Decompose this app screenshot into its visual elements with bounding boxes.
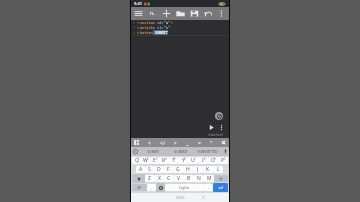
button[interactable]: > [172, 139, 179, 147]
staticText: R [162, 157, 166, 164]
button[interactable]: Shift [132, 174, 145, 183]
staticText: < [148, 140, 151, 146]
button[interactable]: Z [145, 175, 154, 182]
button[interactable]: 2 [141, 157, 150, 164]
button[interactable]: Save [189, 8, 200, 19]
staticText: _ [186, 140, 189, 146]
button[interactable]: B [184, 175, 194, 182]
button[interactable]: Voice input [221, 147, 229, 156]
staticText: 6 [184, 157, 186, 161]
staticText: G [176, 166, 180, 173]
button[interactable]: H [183, 166, 193, 173]
staticText: J [197, 166, 199, 173]
staticText: article [140, 25, 155, 30]
button[interactable]: 6 [178, 157, 188, 164]
button[interactable]: F [163, 166, 173, 173]
staticText: @ [219, 176, 223, 181]
button[interactable]: N [194, 175, 204, 182]
button[interactable]: _ [184, 139, 191, 147]
button[interactable]: 8 [198, 157, 208, 164]
staticText: I [202, 157, 204, 164]
staticText: 1 [138, 157, 140, 161]
staticText: K [206, 166, 210, 173]
button[interactable]: V [174, 175, 184, 182]
button[interactable]: Settings [220, 139, 227, 146]
button[interactable]: A [136, 166, 145, 173]
button[interactable]: 3 [150, 157, 159, 164]
staticText: E [153, 157, 156, 164]
staticText: < [137, 30, 140, 35]
button[interactable] [131, 147, 139, 156]
staticText: X [158, 175, 161, 182]
staticText: < [137, 20, 140, 25]
staticText: W [143, 157, 148, 164]
staticText: Y [182, 157, 185, 164]
staticText: 8 [204, 157, 206, 161]
staticText: SUBMIT [153, 30, 168, 35]
staticText: button [140, 30, 153, 35]
staticText: "a" [164, 20, 171, 25]
button[interactable]: 9 [208, 157, 218, 164]
button[interactable]: C [164, 175, 174, 182]
button[interactable]: SUBMIT [167, 147, 194, 156]
button[interactable]: . [204, 184, 213, 191]
button[interactable]: " [208, 139, 215, 147]
button[interactable]: Settings [215, 112, 223, 120]
button[interactable]: , [147, 184, 156, 191]
staticText: < [137, 25, 140, 30]
staticText: SUBMIT [174, 149, 188, 154]
button[interactable]: J [193, 166, 203, 173]
staticText: H [186, 166, 190, 173]
button[interactable]: Back [192, 193, 215, 202]
button[interactable]: English [165, 184, 204, 191]
button[interactable]: Menu [133, 8, 144, 19]
button[interactable]: D [154, 166, 163, 173]
button[interactable]: New file [161, 8, 172, 19]
button[interactable]: Open [175, 8, 186, 19]
button[interactable]: G [173, 166, 183, 173]
button[interactable]: M [204, 175, 214, 182]
staticText: N [197, 175, 201, 182]
button[interactable]: Keyboard layout [133, 139, 140, 146]
button[interactable]: L [213, 166, 223, 173]
button[interactable]: Run [206, 122, 217, 133]
staticText: 3 [133, 26, 135, 30]
staticText: B [187, 175, 191, 182]
button[interactable]: @ [214, 175, 228, 182]
button[interactable]: 4 [159, 157, 168, 164]
button[interactable]: !#1 [132, 184, 147, 191]
button[interactable]: 7 [188, 157, 198, 164]
staticText: 2 [133, 21, 135, 25]
button[interactable]: Enter [213, 183, 228, 192]
staticText: !#1 [137, 186, 142, 190]
button[interactable]: 0 [218, 157, 228, 164]
staticText: English [179, 186, 190, 190]
staticText: 3 [156, 157, 158, 161]
staticText: section [140, 20, 155, 25]
staticText: P [221, 157, 225, 164]
staticText: F [167, 166, 170, 173]
staticText: Z [148, 175, 151, 182]
staticText: T [172, 157, 175, 164]
button[interactable]: n. [146, 8, 159, 19]
button[interactable]: Change language [156, 183, 165, 192]
staticText: n. [150, 10, 155, 17]
button[interactable]: SUBMI [139, 147, 167, 156]
button[interactable]: More options [216, 8, 227, 19]
button[interactable]: X [154, 175, 164, 182]
button[interactable]: 1 [132, 157, 141, 164]
button[interactable]: 5 [168, 157, 178, 164]
button[interactable]: < [146, 139, 153, 147]
button[interactable]: </ [159, 139, 166, 147]
button[interactable]: S [145, 166, 154, 173]
button[interactable]: Editor options [217, 123, 226, 132]
staticText: . [208, 185, 210, 190]
button[interactable]: Home [169, 193, 192, 202]
staticText: 5 [174, 157, 176, 161]
staticText: M [207, 175, 212, 182]
button[interactable]: SUBMITTED [194, 147, 221, 156]
staticText: 0 [224, 157, 226, 161]
button[interactable]: = [196, 139, 203, 147]
button[interactable]: K [203, 166, 213, 173]
button[interactable]: Undo [203, 8, 214, 19]
